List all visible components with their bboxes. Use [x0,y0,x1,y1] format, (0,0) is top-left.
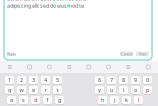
button[interactable]: y [95,86,104,94]
button[interactable]: 5 [53,76,62,84]
button[interactable]: Formatting option [84,63,94,71]
staticText: t [56,86,58,94]
button[interactable]: h [98,96,107,104]
button[interactable]: Formatting option [104,63,114,71]
staticText: l [138,96,139,104]
button[interactable]: p [143,86,152,94]
button[interactable]: g [55,96,64,104]
staticText: 3 [32,76,35,84]
staticText: k [125,96,128,104]
staticText: 1 [8,76,11,84]
button[interactable]: a [7,96,16,104]
button[interactable]: s [19,96,28,104]
button[interactable]: r [41,86,50,94]
staticText: d [34,96,37,104]
staticText: o [134,86,137,94]
button[interactable]: t [53,86,62,94]
button[interactable]: Formatting option [143,63,153,71]
button[interactable]: 4 [41,76,50,84]
staticText: p [146,86,149,94]
button[interactable]: 3 [29,76,38,84]
staticText: q [8,86,11,94]
button[interactable]: 7 [107,76,116,84]
staticText: Lorem ipsum dolor sit amet, cons [7,0,87,2]
button[interactable]: 0 [143,76,152,84]
staticText: Post [139,51,146,56]
button[interactable]: 2 [17,76,26,84]
staticText: w [19,86,23,94]
staticText: e [32,86,35,94]
staticText: h [101,96,104,104]
staticText: adipiscing elit sed do eiusmod te [7,2,84,9]
button[interactable]: f [43,96,52,104]
button[interactable]: 9 [131,76,140,84]
button[interactable]: Formatting option [44,63,54,71]
button[interactable]: Formatting option [25,63,35,71]
staticText: r [44,86,46,94]
staticText: 0 [146,76,149,84]
button[interactable]: Formatting option [123,63,133,71]
staticText: 9 [134,76,137,84]
staticText: Cancel [120,51,132,56]
button[interactable]: o [131,86,140,94]
staticText: y [98,86,101,94]
staticText: s [22,96,25,104]
button[interactable]: Post [136,51,149,56]
button[interactable]: u [107,86,116,94]
button[interactable]: Cancel [120,51,133,56]
button[interactable]: Formatting option [5,63,15,71]
staticText: 4 [44,76,47,84]
staticText: 5 [56,76,59,84]
staticText: 2 [20,76,23,84]
button[interactable]: e [29,86,38,94]
staticText: i [123,86,124,94]
staticText: f [46,96,48,104]
button[interactable]: j [110,96,119,104]
button[interactable]: q [5,86,14,94]
button[interactable]: i [119,86,128,94]
staticText: Reply [7,51,16,56]
button[interactable]: Formatting option [64,63,74,71]
staticText: u [110,86,113,94]
button[interactable]: 1 [5,76,14,84]
button[interactable]: k [122,96,131,104]
staticText: g [58,96,61,104]
staticText: 8 [122,76,125,84]
button[interactable]: d [31,96,40,104]
button[interactable]: l [134,96,143,104]
button[interactable]: w [17,86,26,94]
staticText: 7 [110,76,113,84]
button[interactable]: 8 [119,76,128,84]
button[interactable]: 6 [95,76,104,84]
staticText: a [10,96,13,104]
staticText: 6 [98,76,101,84]
staticText: j [114,96,115,104]
